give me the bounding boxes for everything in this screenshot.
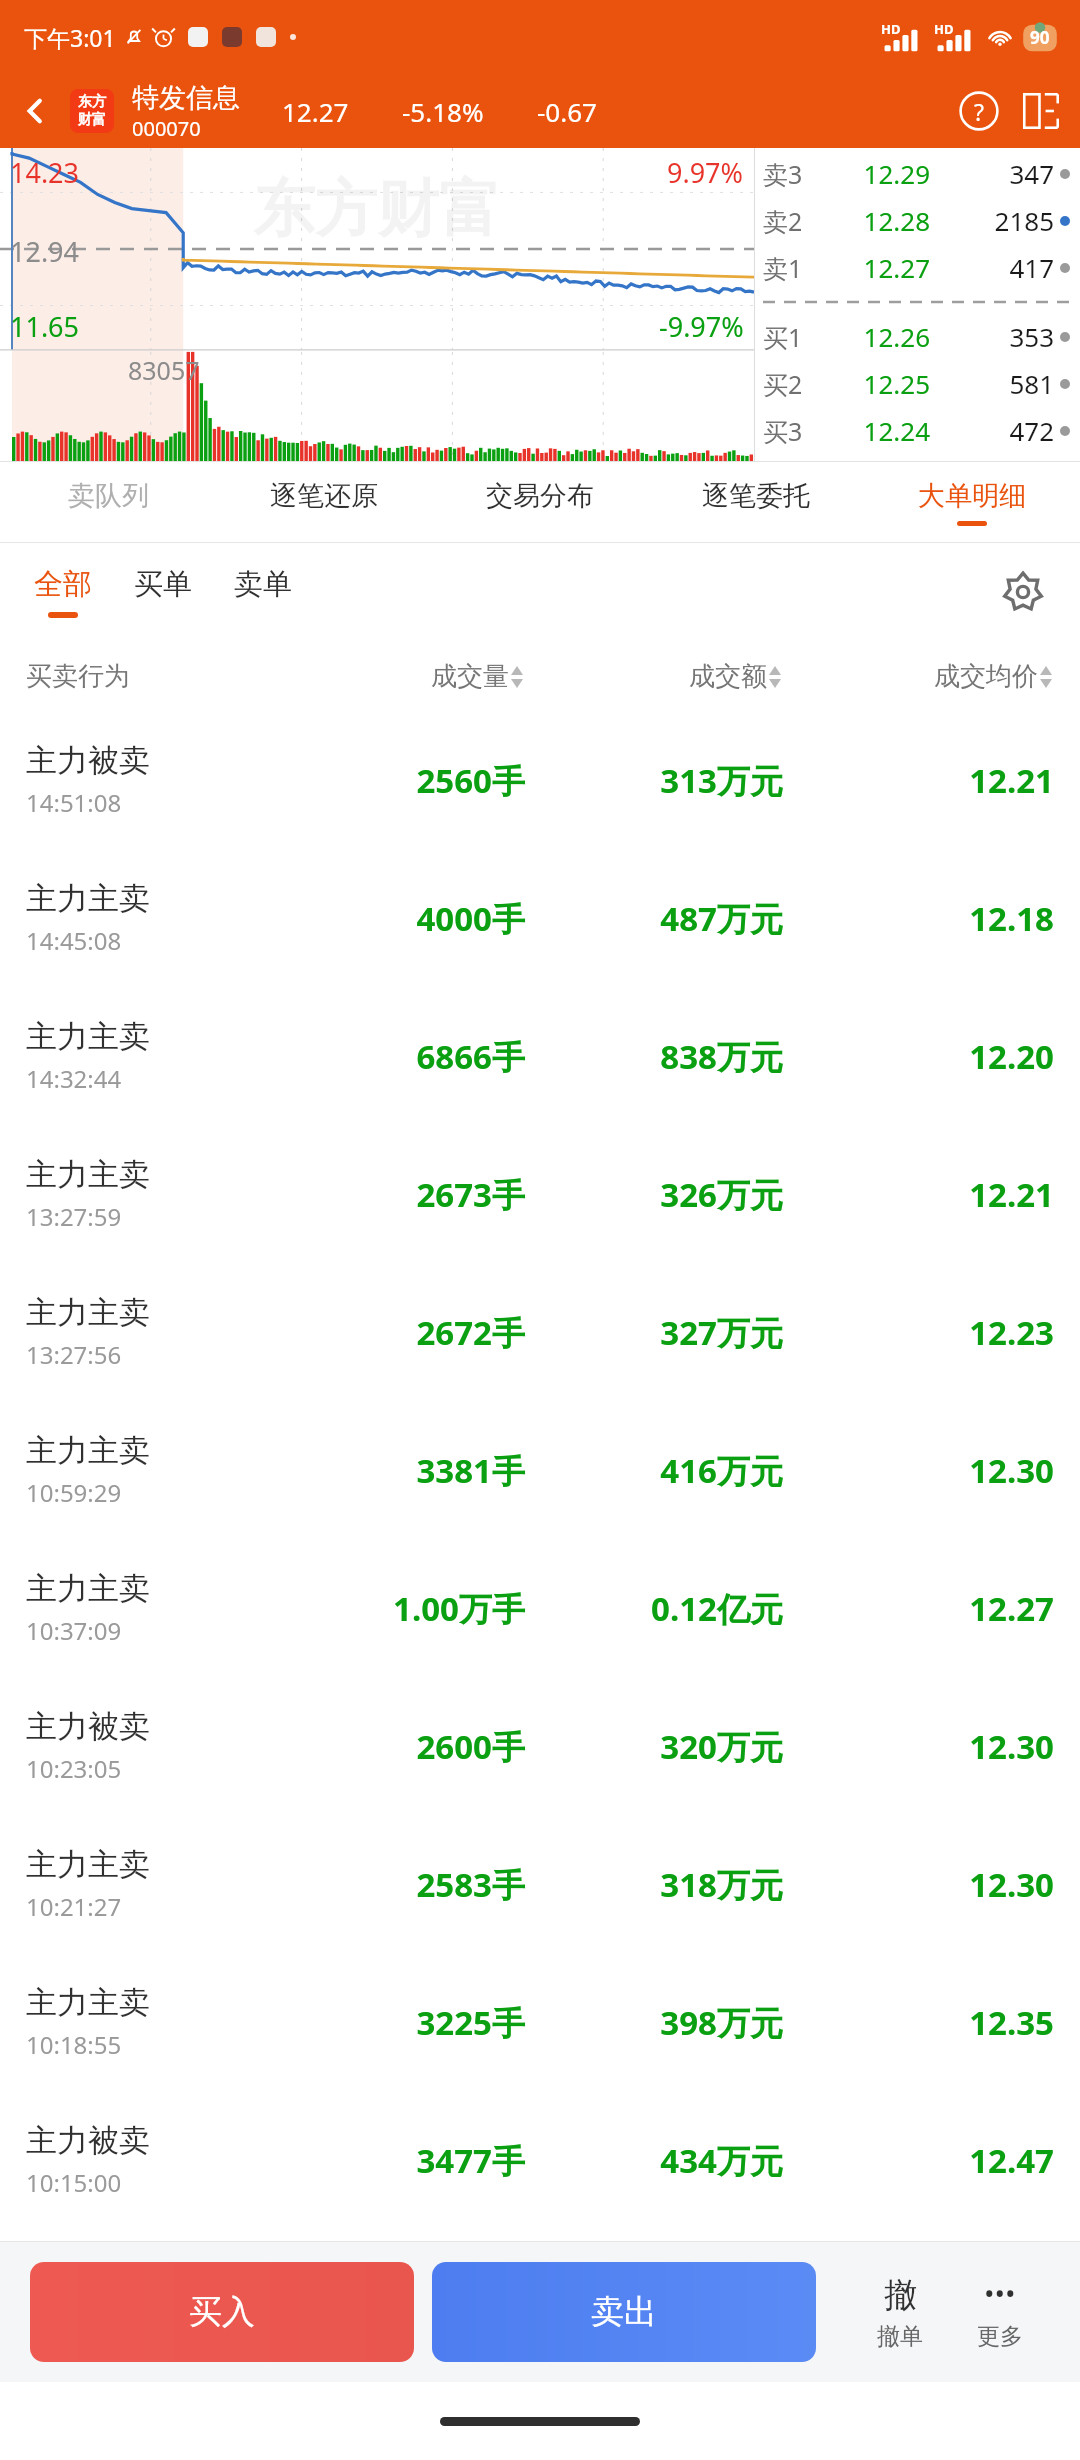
- staticText: 卖队列: [68, 479, 149, 513]
- staticText: 财富: [78, 111, 106, 129]
- button[interactable]: •••: [950, 2274, 1050, 2351]
- button[interactable]: Back: [0, 74, 70, 148]
- staticText: 9.97%: [667, 154, 744, 191]
- button[interactable]: 成交量: [266, 660, 525, 693]
- staticText: 大单明细: [918, 479, 1026, 513]
- staticText: 347: [930, 156, 1054, 191]
- staticText: -5.18%: [402, 94, 537, 129]
- button[interactable]: 买2: [763, 360, 1070, 407]
- button[interactable]: 主力主卖: [0, 1263, 1080, 1401]
- button[interactable]: Settings: [992, 561, 1054, 623]
- staticText: 卖出: [591, 2291, 657, 2333]
- staticText: 83057: [128, 353, 200, 387]
- staticText: 12.27: [282, 94, 402, 129]
- staticText: 10:21:27: [26, 1890, 122, 1923]
- button[interactable]: 主力主卖: [0, 1815, 1080, 1953]
- staticText: 主力主卖: [26, 1293, 150, 1332]
- staticText: 3477手: [266, 2138, 525, 2183]
- button[interactable]: 主力被卖: [0, 711, 1080, 849]
- button[interactable]: 主力主卖: [0, 987, 1080, 1125]
- staticText: 2673手: [266, 1172, 525, 1217]
- button[interactable]: 逐笔委托: [648, 462, 864, 543]
- staticText: 11.65: [10, 308, 80, 345]
- staticText: 撤单: [877, 2322, 923, 2351]
- staticText: 14:32:44: [26, 1062, 122, 1095]
- button[interactable]: 成交额: [525, 660, 783, 693]
- staticText: 13:27:59: [26, 1200, 122, 1233]
- staticText: 12.27: [825, 250, 930, 285]
- staticText: 主力主卖: [26, 1983, 150, 2022]
- button[interactable]: 买单: [126, 566, 200, 618]
- staticText: 更多: [977, 2322, 1023, 2351]
- button[interactable]: 逐笔还原: [216, 462, 432, 543]
- button[interactable]: 成交均价: [783, 660, 1054, 693]
- staticText: 全部: [34, 566, 92, 603]
- staticText: 2583手: [266, 1862, 525, 1907]
- staticText: 逐笔还原: [270, 479, 378, 513]
- staticText: 卖2: [763, 204, 825, 238]
- staticText: 326万元: [525, 1172, 783, 1217]
- staticText: 14:51:08: [26, 786, 122, 819]
- button[interactable]: 买1: [763, 313, 1070, 360]
- staticText: HD: [934, 20, 954, 38]
- staticText: 主力主卖: [26, 1431, 150, 1470]
- staticText: 成交均价: [934, 660, 1038, 693]
- button[interactable]: 主力主卖: [0, 1953, 1080, 2091]
- staticText: 交易分布: [486, 479, 594, 513]
- staticText: 581: [930, 366, 1054, 401]
- staticText: 买1: [763, 320, 825, 354]
- button[interactable]: 主力主卖: [0, 1401, 1080, 1539]
- staticText: 买2: [763, 367, 825, 401]
- staticText: 下午3:01: [24, 22, 116, 53]
- button[interactable]: 卖单: [226, 566, 300, 618]
- button[interactable]: Help: [948, 80, 1010, 142]
- staticText: 主力主卖: [26, 1155, 150, 1194]
- staticText: HD: [881, 20, 901, 38]
- button[interactable]: 全部: [26, 566, 100, 618]
- button[interactable]: 卖3: [763, 150, 1070, 197]
- button[interactable]: 撤: [850, 2274, 950, 2351]
- staticText: 434万元: [525, 2138, 783, 2183]
- button[interactable]: 东方: [70, 89, 114, 133]
- staticText: 13:27:56: [26, 1338, 122, 1371]
- button[interactable]: 主力被卖: [0, 2091, 1080, 2229]
- staticText: 12.21: [783, 758, 1054, 803]
- staticText: 12.26: [825, 319, 930, 354]
- button[interactable]: 卖出: [432, 2262, 816, 2362]
- staticText: 12.30: [783, 1862, 1054, 1907]
- staticText: 416万元: [525, 1448, 783, 1493]
- button[interactable]: 交易分布: [432, 462, 648, 543]
- button[interactable]: 卖2: [763, 197, 1070, 244]
- button[interactable]: 卖1: [763, 244, 1070, 291]
- staticText: 卖1: [763, 251, 825, 285]
- button[interactable]: 主力主卖: [0, 1539, 1080, 1677]
- button[interactable]: 买3: [763, 407, 1070, 454]
- staticText: ?: [974, 96, 984, 127]
- staticText: 成交额: [689, 660, 767, 693]
- staticText: 撤: [884, 2274, 917, 2316]
- staticText: 10:59:29: [26, 1476, 122, 1509]
- button[interactable]: 主力被卖: [0, 1677, 1080, 1815]
- staticText: 买卖行为: [26, 660, 266, 693]
- staticText: 0.12亿元: [525, 1586, 783, 1631]
- button[interactable]: 买入: [30, 2262, 414, 2362]
- button[interactable]: 大单明细: [864, 462, 1080, 543]
- staticText: 12.30: [783, 1724, 1054, 1769]
- button[interactable]: 主力主卖: [0, 849, 1080, 987]
- staticText: 12.35: [783, 2000, 1054, 2045]
- staticText: 2600手: [266, 1724, 525, 1769]
- staticText: 买3: [763, 414, 825, 448]
- staticText: 主力主卖: [26, 1017, 150, 1056]
- button[interactable]: 卖队列: [0, 462, 216, 543]
- staticText: 6866手: [266, 1034, 525, 1079]
- staticText: 12.18: [783, 896, 1054, 941]
- staticText: 12.29: [825, 156, 930, 191]
- staticText: 417: [930, 250, 1054, 285]
- staticText: 卖3: [763, 157, 825, 191]
- staticText: 12.47: [783, 2138, 1054, 2183]
- button[interactable]: Scan: [1010, 80, 1072, 142]
- staticText: 3381手: [266, 1448, 525, 1493]
- staticText: -0.67: [537, 94, 597, 129]
- button[interactable]: 主力主卖: [0, 1125, 1080, 1263]
- staticText: -9.97%: [659, 308, 744, 345]
